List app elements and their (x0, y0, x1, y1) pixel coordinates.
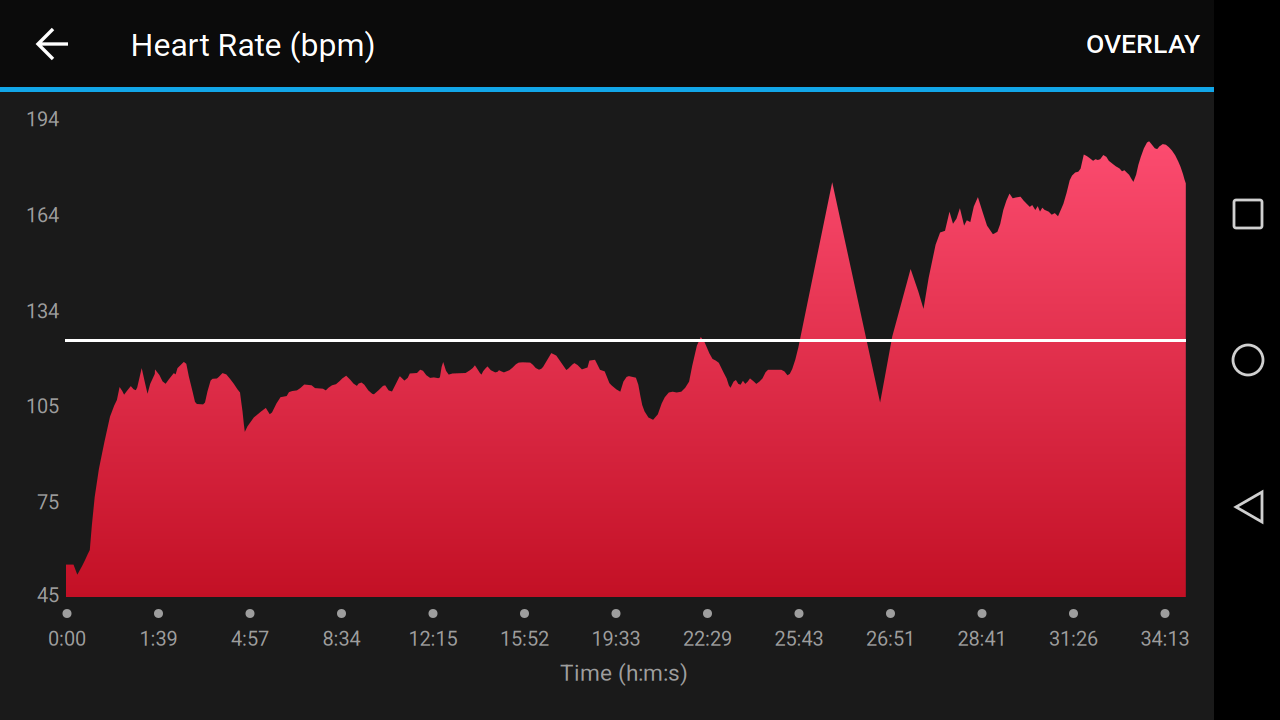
staticText: 75 (37, 491, 59, 514)
staticText: 194 (26, 108, 59, 131)
staticText: 31:26 (1049, 627, 1098, 651)
staticText: 0:00 (48, 627, 86, 651)
button[interactable]: Back (18, 9, 88, 79)
staticText: 28:41 (957, 627, 1006, 651)
button[interactable]: Recent apps (1215, 181, 1280, 247)
staticText: 164 (26, 204, 59, 227)
staticText: 4:57 (231, 627, 269, 651)
staticText: 12:15 (408, 627, 457, 651)
button[interactable]: OVERLAY (1066, 22, 1220, 66)
staticText: 134 (26, 300, 59, 323)
staticText: 22:29 (683, 627, 732, 651)
staticText: 45 (37, 584, 59, 607)
staticText: 34:13 (1140, 627, 1189, 651)
button[interactable]: Back (1216, 472, 1280, 542)
staticText: OVERLAY (1086, 28, 1200, 60)
staticText: Time (h:m:s) (560, 660, 688, 686)
staticText: 19:33 (591, 627, 640, 651)
staticText: 15:52 (500, 627, 549, 651)
staticText: 1:39 (139, 627, 177, 651)
staticText: 25:43 (774, 627, 823, 651)
staticText: Heart Rate (bpm) (130, 26, 375, 64)
button[interactable]: Home (1215, 327, 1280, 393)
staticText: 105 (26, 395, 59, 418)
staticText: 26:51 (866, 627, 915, 651)
staticText: 8:34 (322, 627, 360, 651)
